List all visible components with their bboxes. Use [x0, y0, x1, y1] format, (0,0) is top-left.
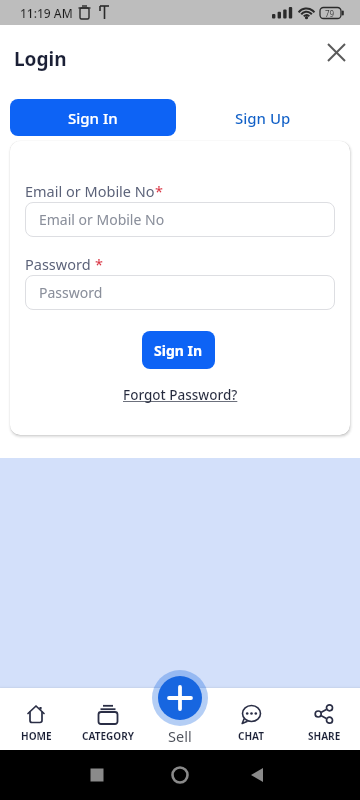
button[interactable]: Sign In	[10, 99, 176, 136]
staticText: Sign Up	[235, 108, 291, 128]
staticText: Email or Mobile No	[25, 181, 155, 201]
button[interactable]	[158, 676, 202, 720]
staticText: CHAT	[238, 729, 265, 743]
button[interactable]: SHARE	[296, 701, 352, 745]
button[interactable]: CHAT	[223, 701, 279, 745]
staticText: Password	[25, 254, 95, 274]
staticText: 79	[325, 8, 335, 19]
staticText: *	[155, 181, 163, 201]
staticText: Password	[39, 283, 103, 302]
staticText: *	[95, 254, 103, 274]
button[interactable]: HOME	[8, 701, 64, 745]
staticText: SHARE	[308, 729, 341, 743]
button[interactable]: CATEGORY	[74, 701, 141, 745]
staticText: Sign In	[154, 341, 203, 360]
staticText: 11:19 AM	[20, 5, 73, 21]
staticText: CATEGORY	[82, 729, 134, 743]
button[interactable]	[319, 35, 353, 69]
staticText: Forgot Password?	[123, 386, 238, 404]
button[interactable]: Sign Up	[220, 99, 306, 136]
button[interactable]: Email or Mobile No	[25, 202, 335, 237]
button[interactable]: Forgot Password?	[123, 386, 238, 404]
button[interactable]: Password	[25, 275, 335, 310]
staticText: Sell	[168, 726, 192, 746]
staticText: Sign In	[68, 108, 118, 128]
staticText: Login	[14, 46, 67, 72]
button[interactable]: Sign In	[142, 331, 215, 369]
staticText: HOME	[21, 729, 52, 743]
staticText: Email or Mobile No	[39, 210, 165, 229]
